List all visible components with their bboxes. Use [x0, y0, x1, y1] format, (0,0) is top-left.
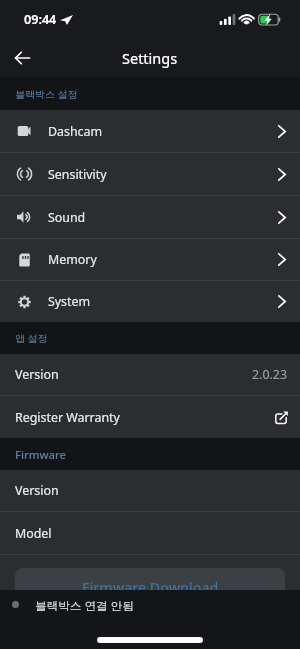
- button[interactable]: Sensitivity: [0, 153, 300, 195]
- staticText: Settings: [122, 48, 178, 68]
- button[interactable]: Firmware Download: [15, 568, 285, 606]
- button[interactable]: Register Warranty: [0, 396, 300, 438]
- staticText: 09:44: [24, 11, 57, 28]
- staticText: Version: [15, 366, 59, 383]
- staticText: Sensitivity: [48, 166, 107, 183]
- staticText: 앱 설정: [15, 331, 48, 345]
- staticText: 블랙박스 연결 안됨: [35, 598, 134, 614]
- staticText: Memory: [48, 251, 97, 268]
- staticText: Sound: [48, 209, 86, 226]
- button[interactable]: Back: [3, 38, 40, 77]
- staticText: Firmware Download: [82, 578, 219, 597]
- staticText: 블랙박스 설정: [15, 87, 78, 101]
- button[interactable]: Version: [0, 470, 300, 511]
- button[interactable]: Model: [0, 512, 300, 554]
- staticText: 2.0.23: [252, 366, 287, 383]
- button[interactable]: Memory: [0, 239, 300, 280]
- staticText: System: [48, 293, 91, 310]
- button[interactable]: Dashcam: [0, 110, 300, 152]
- staticText: Register Warranty: [15, 409, 120, 426]
- button[interactable]: Version: [0, 354, 300, 395]
- staticText: Firmware: [15, 447, 67, 462]
- staticText: Version: [15, 482, 59, 499]
- button[interactable]: System: [0, 281, 300, 322]
- staticText: Model: [15, 525, 52, 542]
- staticText: Dashcam: [48, 123, 103, 140]
- button[interactable]: Sound: [0, 196, 300, 238]
